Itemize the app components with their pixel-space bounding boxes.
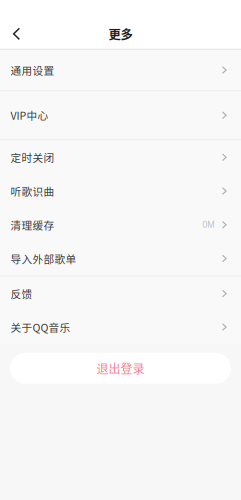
button[interactable]: 听歌识曲 [0, 174, 241, 208]
staticText: 清理缓存 [10, 217, 54, 232]
staticText: 0M [202, 220, 214, 230]
staticText: 反馈 [10, 286, 32, 301]
button[interactable]: 通用设置 [0, 50, 241, 90]
staticText: 通用设置 [10, 62, 54, 78]
staticText: 关于QQ音乐 [10, 319, 70, 335]
button[interactable]: 关于QQ音乐 [0, 310, 241, 344]
button[interactable]: 退出登录 [10, 353, 231, 384]
button[interactable]: VIP中心 [0, 91, 241, 139]
staticText: 退出登录 [96, 360, 144, 377]
button[interactable]: 清理缓存 [0, 208, 241, 242]
staticText: 听歌识曲 [10, 183, 54, 199]
button[interactable]: 反馈 [0, 277, 241, 310]
staticText: VIP中心 [10, 107, 48, 123]
staticText: 导入外部歌单 [10, 251, 76, 266]
button[interactable]: 导入外部歌单 [0, 242, 241, 275]
staticText: 定时关闭 [10, 150, 54, 165]
button[interactable]: Back [0, 19, 33, 49]
button[interactable]: 定时关闭 [0, 140, 241, 174]
staticText: 更多 [108, 25, 132, 43]
